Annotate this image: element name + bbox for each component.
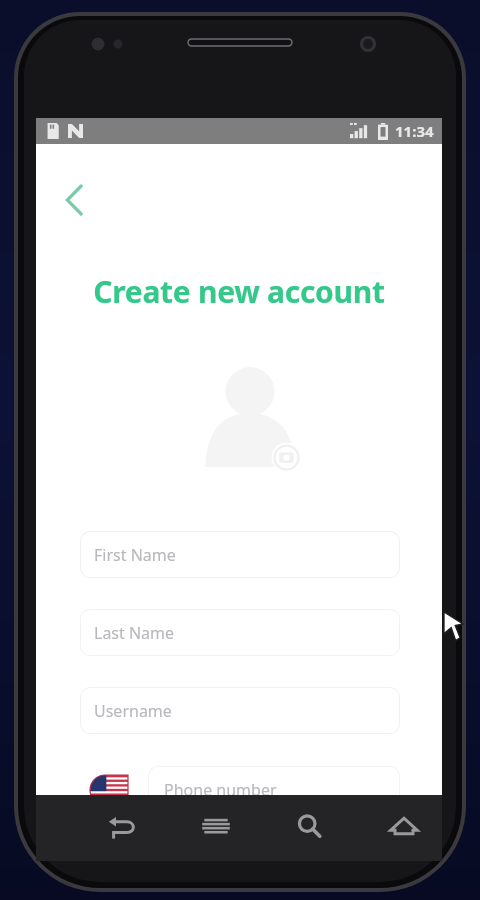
button[interactable]: Add profile photo <box>202 364 298 468</box>
staticText: Username <box>94 700 172 722</box>
button[interactable]: Last Name <box>80 609 400 656</box>
button[interactable]: Back <box>50 176 98 224</box>
staticText: Create new account <box>36 271 442 312</box>
staticText: First Name <box>94 544 176 566</box>
button[interactable]: Back <box>96 801 148 851</box>
button[interactable]: Username <box>80 687 400 734</box>
button[interactable]: Menu <box>190 801 242 851</box>
button[interactable]: Select country <box>80 766 138 813</box>
button[interactable]: Home <box>378 801 430 851</box>
button[interactable]: Phone number <box>148 766 400 813</box>
staticText: Last Name <box>94 622 175 644</box>
staticText: Phone number <box>164 779 277 801</box>
staticText: 11:34 <box>395 121 434 141</box>
button[interactable]: First Name <box>80 531 400 578</box>
button[interactable]: Search <box>283 801 335 851</box>
